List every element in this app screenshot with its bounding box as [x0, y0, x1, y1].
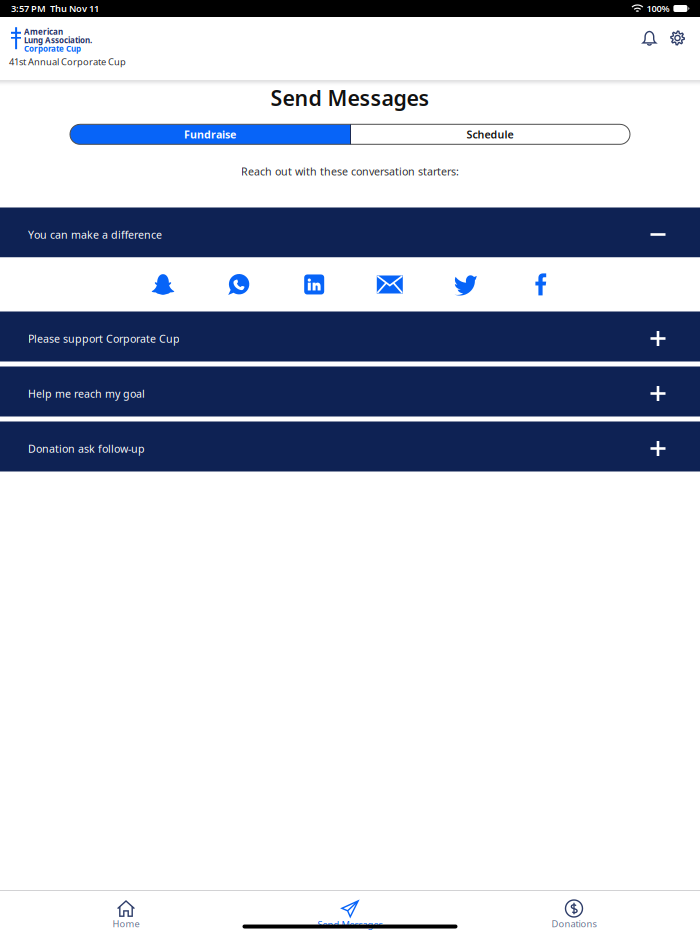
staticText: Corporate Cup — [24, 43, 81, 54]
button[interactable]: Donation ask follow-up — [0, 421, 700, 471]
button[interactable]: Share on Twitter — [428, 271, 503, 297]
staticText: Help me reach my goal — [28, 386, 145, 401]
button[interactable]: Donations — [462, 891, 686, 934]
staticText: Reach out with these conversation starte… — [241, 164, 459, 178]
button[interactable]: Share on Snapchat — [125, 271, 201, 297]
staticText: Fundraise — [184, 127, 236, 141]
button[interactable]: Help me reach my goal — [0, 366, 700, 416]
button[interactable]: Share by email — [352, 271, 428, 297]
button[interactable]: Home — [14, 891, 238, 934]
button[interactable]: You can make a difference — [0, 207, 700, 257]
staticText: Please support Corporate Cup — [28, 331, 180, 346]
button[interactable]: Share on LinkedIn — [276, 271, 352, 297]
staticText: Send Messages — [270, 83, 429, 112]
staticText: American — [24, 26, 63, 37]
staticText: Lung Association. — [24, 35, 92, 45]
staticText: Home — [112, 917, 139, 930]
staticText: Thu Nov 11 — [50, 2, 99, 15]
button[interactable]: Schedule — [350, 124, 630, 144]
button[interactable]: Please support Corporate Cup — [0, 311, 700, 361]
staticText: Donation ask follow-up — [28, 441, 145, 456]
staticText: 3:57 PM — [11, 2, 46, 15]
staticText: Send Messages — [317, 918, 382, 931]
button[interactable]: Share on WhatsApp — [201, 271, 276, 297]
staticText: Donations — [551, 917, 596, 930]
staticText: You can make a difference — [28, 227, 162, 242]
button[interactable]: Fundraise — [70, 124, 350, 144]
button[interactable]: Share on Facebook — [503, 271, 579, 297]
staticText: 100% — [646, 2, 669, 15]
button[interactable]: Settings — [664, 24, 691, 52]
button[interactable]: Notifications — [636, 24, 662, 52]
staticText: Schedule — [466, 127, 513, 141]
staticText: 41st Annual Corporate Cup — [9, 55, 126, 68]
button[interactable]: Send Messages — [238, 891, 462, 934]
